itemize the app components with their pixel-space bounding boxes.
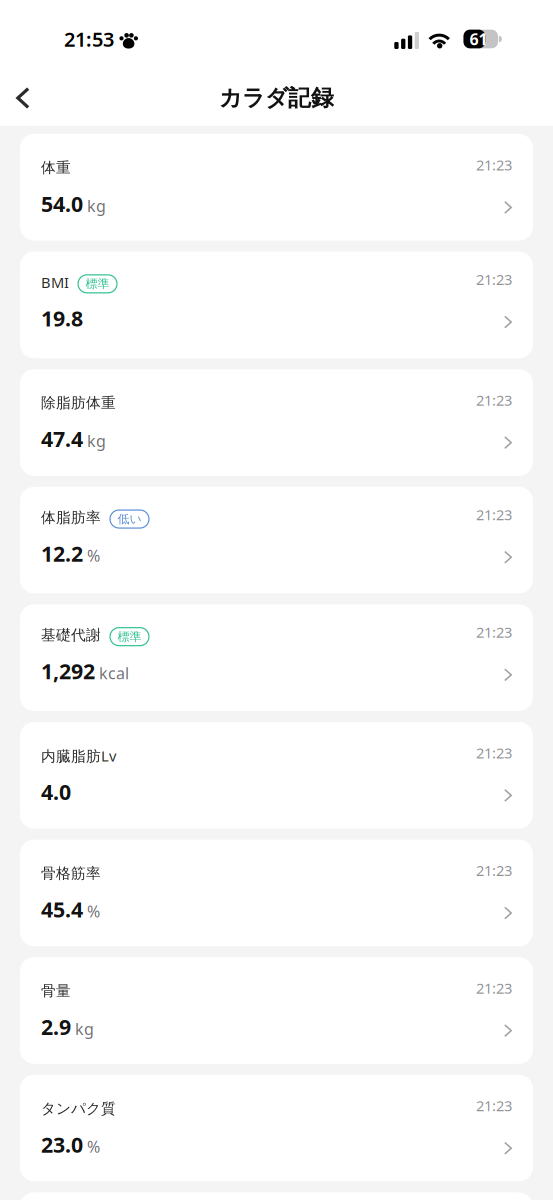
staticText: 21:23 <box>476 978 512 998</box>
button[interactable]: 骨格筋率 <box>20 840 533 946</box>
staticText: 21:23 <box>476 1096 512 1115</box>
staticText: kg <box>87 430 106 451</box>
staticText: 45.4 <box>41 895 83 923</box>
staticText: 除脂肪体重 <box>41 394 116 412</box>
button[interactable]: 体脂肪率 <box>20 487 533 593</box>
staticText: 54.0 <box>41 189 83 218</box>
staticText: 21:53 <box>64 26 114 52</box>
staticText: 標準 <box>85 276 109 291</box>
staticText: 21:23 <box>476 155 512 174</box>
staticText: 低い <box>117 512 141 526</box>
staticText: 内臓脂肪Lv <box>41 746 116 765</box>
staticText: 基礎代謝 <box>41 626 101 644</box>
staticText: 標準 <box>117 629 141 644</box>
staticText: カラダ記録 <box>219 84 334 112</box>
staticText: kg <box>87 195 106 216</box>
staticText: 21:23 <box>476 270 512 289</box>
button[interactable]: BMI <box>20 252 533 358</box>
staticText: 骨格筋率 <box>41 864 101 882</box>
button[interactable]: 除脂肪体重 <box>20 369 533 476</box>
staticText: 21:23 <box>476 390 512 410</box>
staticText: kcal <box>99 662 129 684</box>
staticText: 12.2 <box>41 539 83 568</box>
staticText: 21:23 <box>476 505 512 524</box>
button[interactable]: 戻る <box>0 75 46 121</box>
button[interactable]: 基礎代謝 <box>20 604 533 711</box>
button[interactable]: タンパク質 <box>20 1075 533 1181</box>
staticText: 61 <box>469 28 487 50</box>
staticText: 体重 <box>41 159 71 177</box>
staticText: % <box>87 901 100 922</box>
staticText: タンパク質 <box>41 1099 116 1117</box>
staticText: 21:23 <box>476 861 512 880</box>
staticText: 47.4 <box>41 425 83 453</box>
staticText: 19.8 <box>41 304 83 332</box>
staticText: 23.0 <box>41 1130 83 1159</box>
staticText: 4.0 <box>41 777 71 806</box>
button[interactable]: 内臓脂肪Lv <box>20 722 533 829</box>
button[interactable]: 骨量 <box>20 957 533 1064</box>
staticText: 体脂肪率 <box>41 508 101 526</box>
staticText: kg <box>75 1018 94 1039</box>
staticText: % <box>87 1136 100 1157</box>
button[interactable]: 体重 <box>20 134 533 241</box>
staticText: 21:23 <box>476 743 512 762</box>
staticText: 1,292 <box>41 657 95 685</box>
staticText: % <box>87 545 100 566</box>
staticText: BMI <box>41 273 69 292</box>
staticText: 2.9 <box>41 1013 71 1041</box>
staticText: 骨量 <box>41 982 71 1000</box>
staticText: 21:23 <box>476 622 512 642</box>
